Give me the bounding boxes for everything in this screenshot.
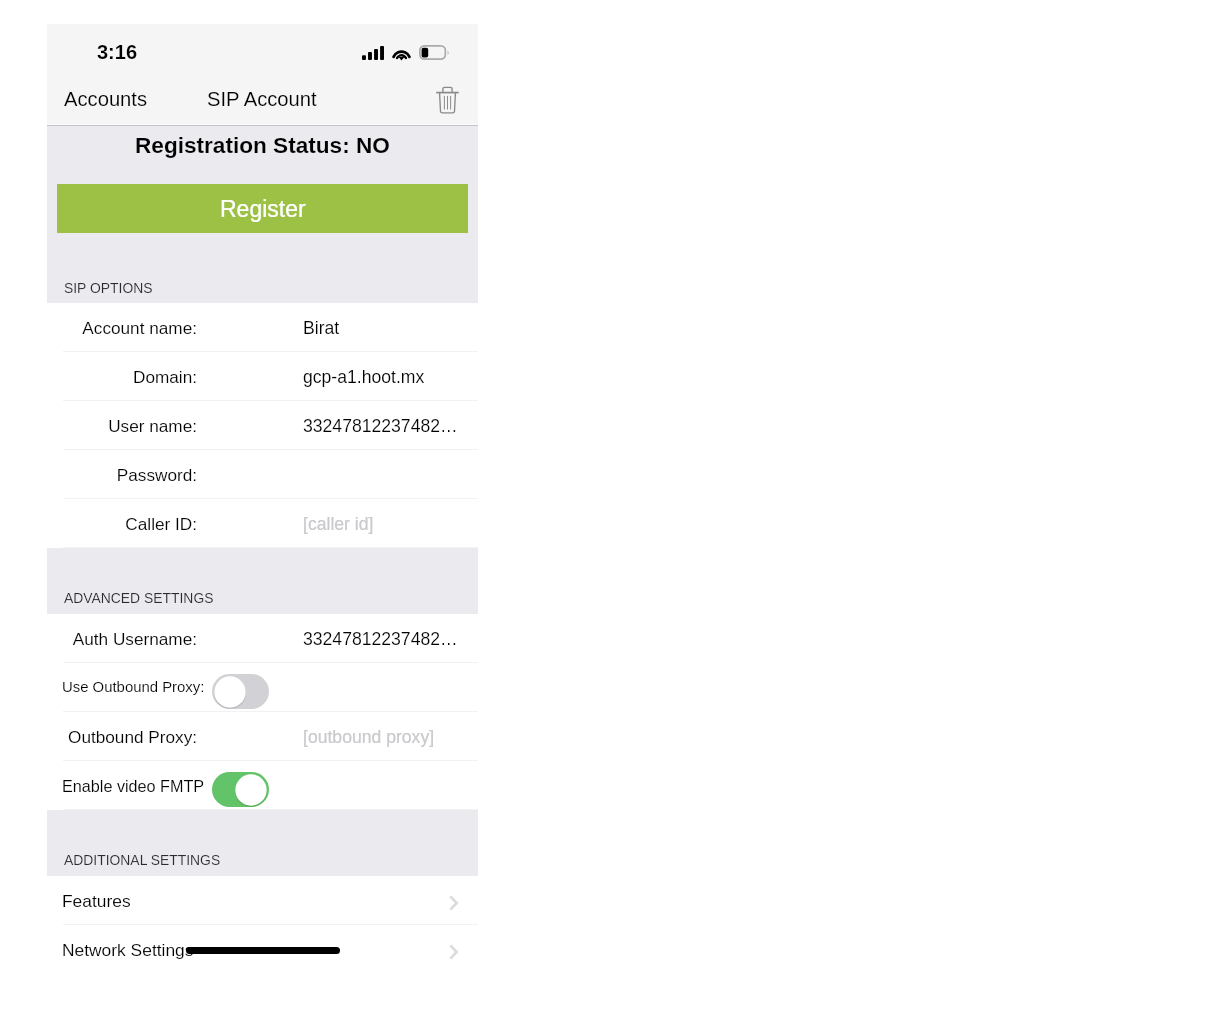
staticText: Outbound Proxy:	[47, 727, 197, 746]
staticText: ADVANCED SETTINGS	[64, 590, 214, 606]
button[interactable]: Use Outbound Proxy:	[47, 663, 478, 712]
staticText: Features	[62, 891, 131, 910]
staticText: Enable video FMTP	[62, 777, 205, 795]
staticText: Register	[220, 196, 306, 222]
button[interactable]: Delete account	[430, 83, 464, 117]
staticText: Registration Status: NO	[135, 133, 390, 158]
button[interactable]: Use Outbound Proxy:	[212, 674, 269, 709]
staticText: Caller ID:	[47, 514, 197, 533]
staticText: ADDITIONAL SETTINGS	[64, 852, 221, 868]
button[interactable]: Account name:	[47, 303, 478, 352]
button[interactable]: Accounts	[47, 83, 158, 116]
staticText: 3:16	[97, 41, 138, 63]
staticText: Password:	[47, 465, 197, 484]
staticText: SIP OPTIONS	[64, 280, 153, 296]
staticText: User name:	[47, 416, 197, 435]
button[interactable]: Caller ID:	[47, 499, 478, 548]
staticText: 33247812237482…	[303, 416, 463, 436]
button[interactable]: Enable video FMTP	[47, 761, 478, 810]
button[interactable]: User name:	[47, 401, 478, 450]
button[interactable]: Register	[57, 184, 468, 233]
staticText: [outbound proxy]	[303, 727, 463, 747]
button[interactable]: Password:	[47, 450, 478, 499]
staticText: Auth Username:	[47, 629, 197, 648]
button[interactable]: Outbound Proxy:	[47, 712, 478, 761]
staticText: Accounts	[64, 88, 148, 111]
staticText: gcp-a1.hoot.mx	[303, 367, 463, 387]
button[interactable]: Enable video FMTP	[212, 772, 269, 807]
button[interactable]: Network Settings	[47, 925, 478, 974]
staticText: Network Settings	[62, 940, 194, 959]
staticText: Use Outbound Proxy:	[62, 679, 205, 696]
staticText: Domain:	[47, 367, 197, 386]
staticText: Birat	[303, 318, 463, 338]
button[interactable]: Domain:	[47, 352, 478, 401]
staticText: [caller id]	[303, 514, 463, 534]
button[interactable]: Features	[47, 876, 478, 925]
staticText: SIP Account	[207, 88, 317, 111]
button[interactable]: Auth Username:	[47, 614, 478, 663]
staticText: 33247812237482…	[303, 629, 463, 649]
staticText: Account name:	[47, 318, 197, 337]
